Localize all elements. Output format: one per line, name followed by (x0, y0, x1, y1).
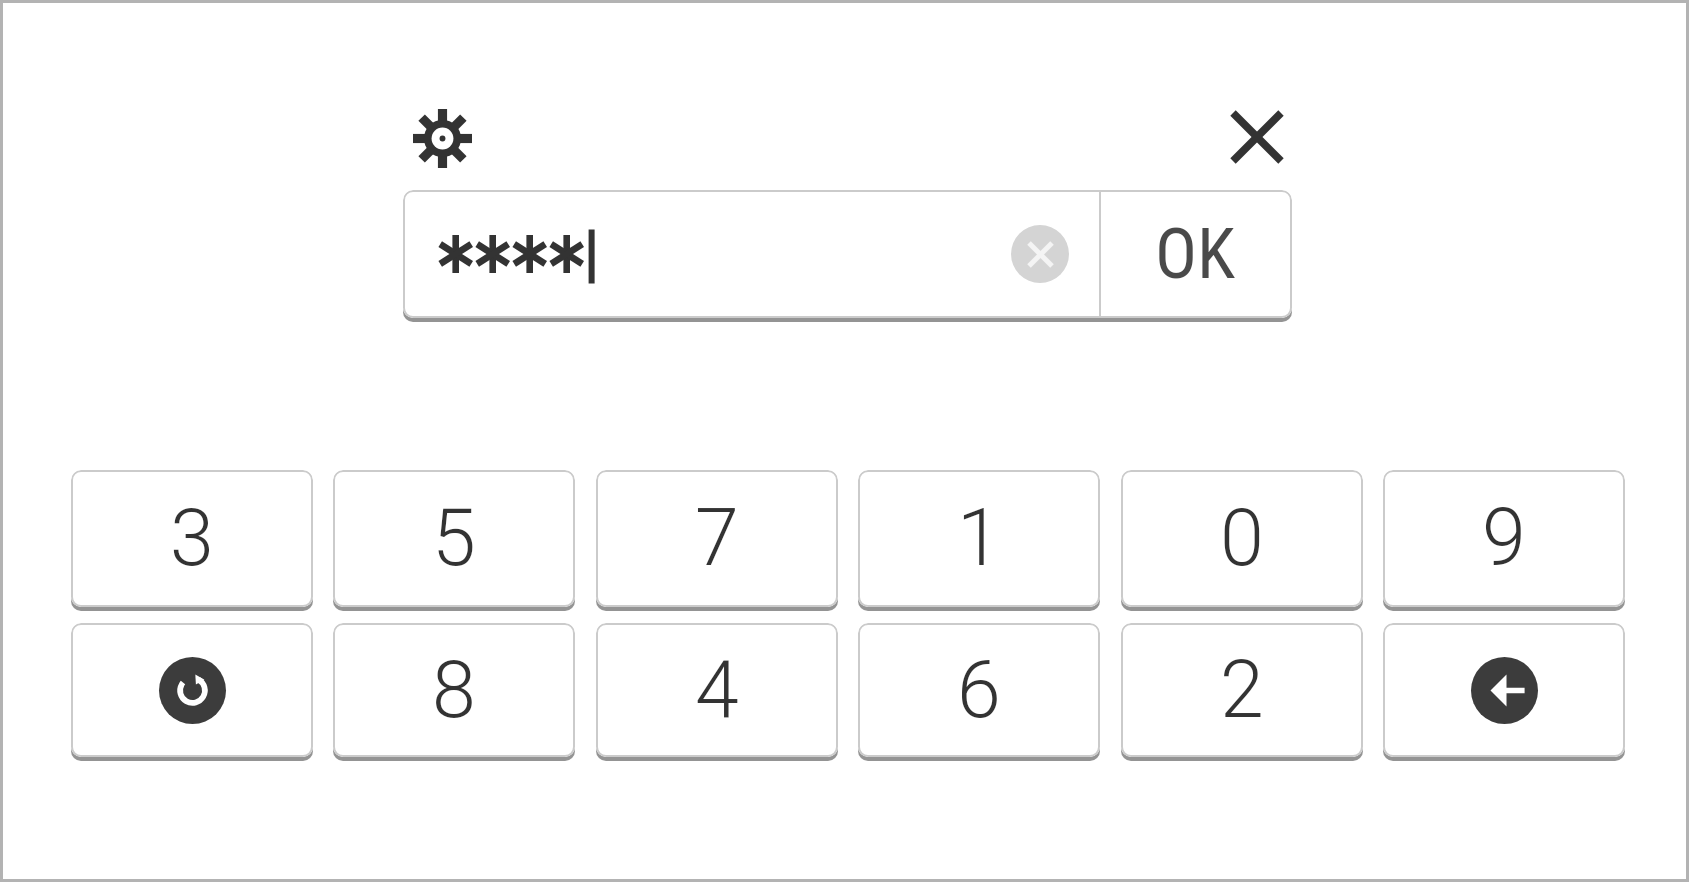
staticText: 5 (432, 492, 476, 585)
button[interactable]: Clear text (403, 190, 1099, 318)
staticText: 7 (695, 492, 739, 585)
button[interactable]: 4 (596, 623, 838, 757)
staticText: 2 (1220, 644, 1264, 737)
button[interactable]: 6 (858, 623, 1100, 757)
button[interactable]: 5 (333, 470, 575, 607)
staticText: 3 (170, 492, 214, 585)
button[interactable]: 7 (596, 470, 838, 607)
button[interactable]: OK (1101, 190, 1292, 318)
button[interactable]: 1 (858, 470, 1100, 607)
button[interactable]: Settings (413, 109, 472, 168)
staticText: 6 (957, 644, 1001, 737)
button[interactable]: 0 (1121, 470, 1363, 607)
staticText: 9 (1482, 492, 1526, 585)
button[interactable]: Shuffle keys (71, 623, 313, 757)
button[interactable]: 3 (71, 470, 313, 607)
staticText: 0 (1220, 492, 1264, 585)
staticText: 1 (957, 492, 1001, 585)
button[interactable]: Backspace (1383, 623, 1625, 757)
staticText: 8 (432, 644, 476, 737)
button[interactable]: Clear text (1011, 225, 1069, 283)
button[interactable]: 2 (1121, 623, 1363, 757)
staticText: OK (1155, 213, 1236, 295)
button[interactable]: 8 (333, 623, 575, 757)
button[interactable]: 9 (1383, 470, 1625, 607)
staticText: 4 (695, 644, 739, 737)
button[interactable]: Close (1233, 113, 1281, 161)
